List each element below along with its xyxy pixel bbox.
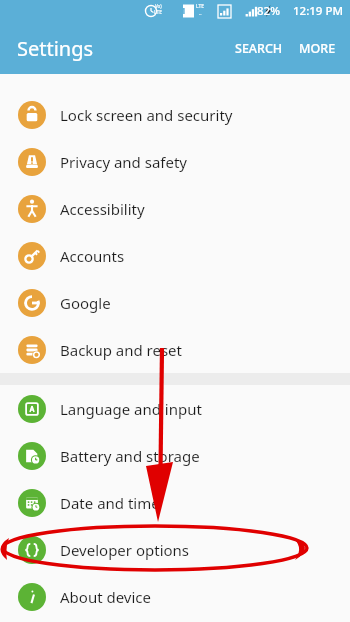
staticText: Lock screen and security [60,105,233,125]
staticText: 1 [181,5,186,17]
button[interactable]: MORE [291,30,350,67]
button[interactable]: Battery and storage [0,432,350,479]
button[interactable]: About device [0,573,350,620]
button[interactable]: Lock screen and security [0,91,350,138]
staticText: .. [199,10,202,17]
button[interactable]: Language and input [0,385,350,432]
staticText: Language and input [60,399,202,419]
staticText: SEARCH [235,40,283,57]
staticText: 12:19 PM [293,3,344,19]
staticText: Settings [17,35,94,62]
staticText: 82% [257,3,280,19]
staticText: Google [60,293,111,313]
button[interactable]: Accessibility [0,185,350,232]
staticText: LTE [196,3,205,10]
button[interactable]: Accounts [0,232,350,279]
staticText: About device [60,587,152,607]
button[interactable]: Date and time [0,479,350,526]
staticText: LTE [154,9,163,16]
button[interactable]: Google [0,279,350,326]
staticText: Backup and reset [60,340,182,360]
staticText: Battery and storage [60,446,200,466]
staticText: Accessibility [60,199,145,219]
button[interactable]: Privacy and safety [0,138,350,185]
staticText: Date and time [60,493,160,513]
staticText: Developer options [60,540,190,560]
button[interactable]: Backup and reset [0,326,350,373]
staticText: MORE [299,40,336,57]
staticText: Vo) [155,3,162,9]
staticText: Privacy and safety [60,152,188,172]
button[interactable]: Developer options [0,526,350,573]
button[interactable]: SEARCH [227,30,291,67]
staticText: Accounts [60,246,125,266]
